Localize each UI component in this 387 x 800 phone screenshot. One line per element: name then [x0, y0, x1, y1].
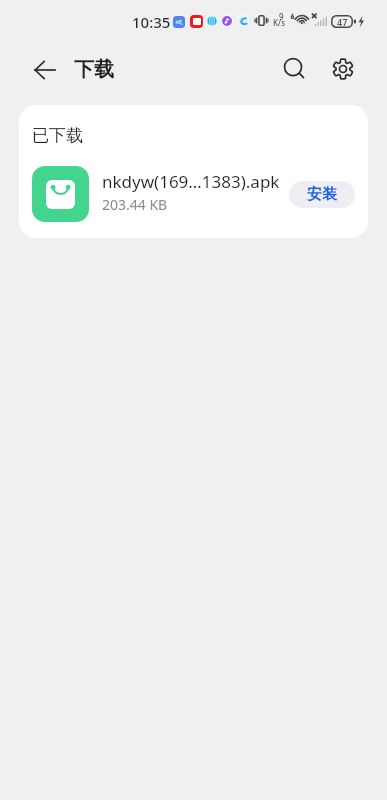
staticText: nkdyw(169…1383).apk — [102, 170, 279, 193]
button[interactable]: Search — [279, 54, 311, 86]
staticText: 10:35 — [132, 12, 171, 32]
button[interactable]: 安装 — [289, 181, 355, 208]
staticText: 安装 — [307, 185, 337, 204]
button[interactable]: Settings — [328, 54, 360, 86]
staticText: 47 — [337, 16, 348, 28]
staticText: 203.44 KB — [102, 195, 168, 214]
button[interactable]: Back — [29, 55, 59, 85]
staticText: 9 — [279, 11, 284, 22]
staticText: 已下载 — [32, 125, 83, 146]
staticText: 下载 — [74, 57, 114, 82]
staticText: K/s — [273, 17, 286, 28]
button[interactable]: nkdyw(169…1383).apk — [32, 166, 355, 222]
